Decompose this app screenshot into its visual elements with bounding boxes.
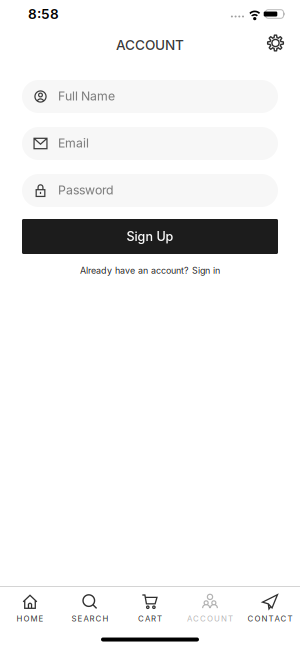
button[interactable]: C A R T (120, 594, 180, 623)
button[interactable]: C O N T A C T (240, 594, 300, 623)
staticText: Email (58, 136, 89, 150)
button[interactable]: Settings (267, 34, 300, 55)
staticText: C A R T (138, 614, 162, 623)
button[interactable]: Password (0, 174, 300, 207)
button[interactable]: Sign Up (0, 219, 300, 254)
button[interactable]: Full Name (0, 80, 300, 113)
staticText: S E A R C H (71, 614, 108, 623)
button[interactable]: Already have an account? Sign in (80, 254, 220, 276)
staticText: Password (58, 183, 114, 197)
button[interactable]: S E A R C H (60, 594, 120, 623)
staticText: ACCOUNT (116, 37, 184, 53)
button[interactable]: A C C O U N T (180, 594, 240, 623)
button[interactable]: H O M E (0, 594, 60, 623)
staticText: A C C O U N T (187, 614, 233, 623)
staticText: 8:58 (28, 6, 59, 22)
staticText: H O M E (16, 614, 43, 623)
staticText: Already have an account? Sign in (80, 265, 220, 276)
button[interactable]: Email (0, 127, 300, 160)
staticText: C O N T A C T (247, 614, 292, 623)
staticText: Sign Up (126, 229, 173, 244)
staticText: Full Name (58, 89, 115, 103)
